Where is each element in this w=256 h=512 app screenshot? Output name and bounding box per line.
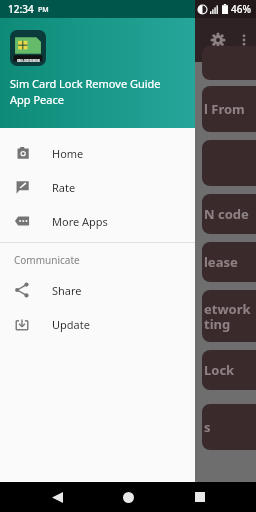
staticText: N code (204, 205, 249, 223)
staticText: Share (52, 283, 82, 298)
button[interactable]: N code (202, 194, 256, 234)
staticText: lease (204, 253, 238, 271)
button[interactable]: Lock (202, 350, 256, 390)
staticText: Lock (204, 361, 235, 379)
button[interactable]: etwork ting (202, 290, 256, 342)
button[interactable]: Settings (206, 28, 230, 52)
staticText: Sim Card Lock Remove Guide App Peace (10, 76, 161, 107)
button[interactable]: Home (113, 482, 143, 512)
button[interactable]: Home (0, 136, 195, 170)
button[interactable]: Share (0, 273, 195, 307)
staticText: PM (38, 5, 49, 15)
button[interactable]: lease (202, 242, 256, 282)
button[interactable]: Update (0, 307, 195, 341)
staticText: Rate (52, 180, 76, 195)
staticText: 46% (231, 2, 251, 16)
staticText: Home (52, 146, 84, 161)
button[interactable]: l From (202, 86, 256, 132)
staticText: l From (204, 100, 245, 118)
staticText: Update (52, 317, 90, 332)
staticText: s (204, 418, 211, 436)
button[interactable]: s (202, 404, 256, 450)
button[interactable]: More Apps (0, 204, 195, 238)
staticText: More Apps (52, 214, 108, 229)
button[interactable] (202, 46, 256, 80)
staticText: SIM LOCK REMOVE (17, 59, 40, 62)
staticText: Communicate (14, 253, 80, 267)
button[interactable]: Back (42, 482, 72, 512)
button[interactable]: Rate (0, 170, 195, 204)
staticText: 12:34 (8, 2, 34, 16)
button[interactable]: Recent apps (185, 482, 215, 512)
button[interactable]: More options (234, 30, 254, 50)
staticText: etwork ting (204, 300, 251, 333)
button[interactable] (202, 140, 256, 186)
